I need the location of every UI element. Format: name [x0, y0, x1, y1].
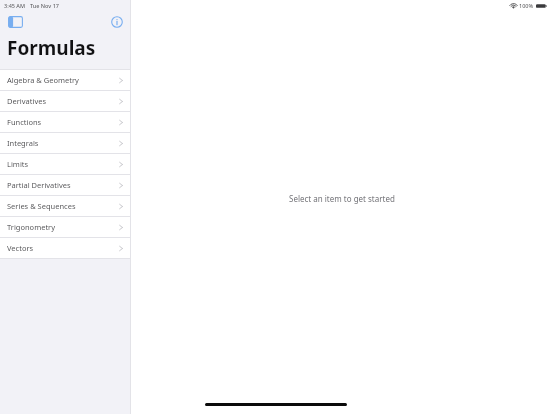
button[interactable]: Vectors [0, 238, 130, 259]
button[interactable]: Limits [0, 154, 130, 175]
staticText: 100% [519, 2, 534, 9]
staticText: Partial Derivatives [7, 180, 71, 190]
staticText: Tue Nov 17 [30, 2, 59, 9]
button[interactable]: Toggle sidebar [6, 14, 24, 29]
button[interactable]: Algebra & Geometry [0, 70, 130, 91]
staticText: Select an item to get started [289, 193, 395, 204]
staticText: Vectors [7, 243, 34, 253]
staticText: Derivatives [7, 96, 47, 106]
staticText: Limits [7, 159, 29, 169]
button[interactable]: Series & Sequences [0, 196, 130, 217]
staticText: Algebra & Geometry [7, 75, 79, 85]
staticText: Functions [7, 117, 42, 127]
button[interactable]: Trigonometry [0, 217, 130, 238]
staticText: 3:45 AM [4, 2, 26, 9]
button[interactable]: Integrals [0, 133, 130, 154]
staticText: Series & Sequences [7, 201, 76, 211]
button[interactable]: Functions [0, 112, 130, 133]
button[interactable]: Partial Derivatives [0, 175, 130, 196]
staticText: Integrals [7, 138, 39, 148]
staticText: Trigonometry [7, 222, 56, 232]
button[interactable]: Information [109, 14, 124, 29]
button[interactable]: Derivatives [0, 91, 130, 112]
staticText: Formulas [7, 35, 96, 61]
